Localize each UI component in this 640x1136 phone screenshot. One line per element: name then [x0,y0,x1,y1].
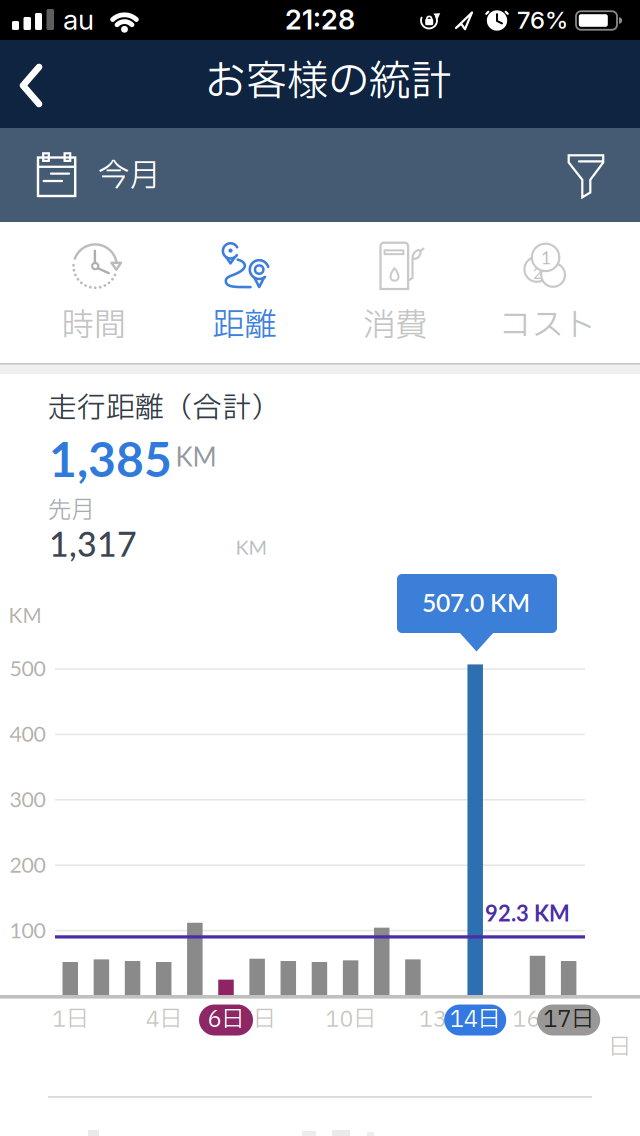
button[interactable]: 距離 [169,222,319,363]
staticText: 17日 [543,1003,594,1037]
staticText: 1日 [52,1003,88,1036]
staticText: 日 [608,1031,630,1064]
staticText: 消費 [363,302,427,350]
staticText: 16日 [512,1003,562,1036]
staticText: 2 [533,264,542,282]
staticText: 4日 [146,1003,182,1036]
staticText: 76% [517,5,568,34]
staticText: 400 [9,721,45,746]
staticText: 1,385 [49,430,172,487]
staticText: お客様の統計 [205,51,451,113]
staticText: 300 [9,786,45,812]
staticText: au [63,3,94,36]
staticText: 10日 [326,1003,376,1036]
staticText: 1,317 [49,523,137,564]
staticText: 時間 [62,302,126,350]
staticText: 先月 [48,493,94,528]
button[interactable]: 時間 [19,222,169,363]
staticText: 500 [9,655,45,681]
staticText: 1 [541,247,551,268]
staticText: 距離 [212,302,276,350]
button[interactable]: 17日 [537,1004,600,1035]
button[interactable]: 消費 [320,222,470,363]
button[interactable]: 2 [472,222,622,363]
staticText: 200 [9,852,45,877]
staticText: コスト [499,302,595,350]
staticText: 走行距離（合計） [48,387,280,430]
staticText: 6日 [207,1003,244,1037]
staticText: 92.3 KM [485,900,570,926]
staticText: KM [175,441,216,472]
staticText: 今月 [98,153,160,200]
button[interactable]: 6日 [199,1004,253,1035]
staticText: 7日 [239,1003,275,1036]
staticText: 507.0 KM [422,588,530,617]
button[interactable]: 14日 [444,1004,506,1035]
staticText: KM [235,535,267,559]
button[interactable]: Filter [552,137,628,215]
staticText: 13日 [419,1003,469,1036]
button[interactable]: 今月 [20,137,190,215]
staticText: 14日 [450,1003,501,1037]
staticText: 100 [9,917,45,943]
staticText: 21:28 [285,3,355,36]
button[interactable]: Back [0,40,88,128]
staticText: KM [8,603,41,627]
